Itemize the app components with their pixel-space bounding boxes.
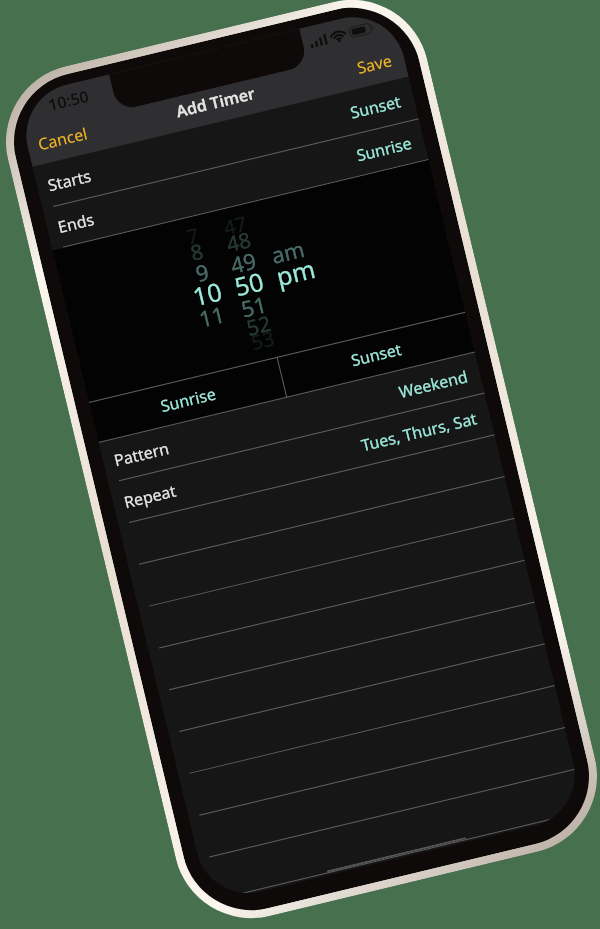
staticText: am — [268, 233, 307, 270]
other: Battery — [348, 21, 376, 39]
staticText: Sunset — [349, 338, 404, 371]
staticText: Ends — [56, 208, 97, 238]
staticText: Save — [355, 49, 394, 79]
button[interactable]: Sunrise — [89, 357, 286, 443]
staticText: 11 — [196, 298, 228, 333]
staticText: Add Timer — [174, 82, 258, 122]
button[interactable]: Repeat — [108, 393, 495, 526]
staticText: 7 — [184, 221, 202, 250]
staticText: Sunrise — [158, 383, 218, 417]
staticText: Sunset — [348, 90, 404, 124]
other: Wi-Fi — [329, 28, 347, 43]
staticText: Weekend — [397, 365, 470, 403]
staticText: Tues, Thurs, Sat — [359, 407, 480, 456]
button[interactable]: Sunset — [277, 312, 475, 398]
button[interactable]: Cancel — [24, 117, 100, 161]
staticText: Cancel — [36, 122, 90, 155]
button[interactable]: Save — [344, 43, 407, 84]
staticText: 49 — [227, 244, 260, 280]
staticText: Repeat — [122, 479, 178, 513]
staticText: 50 — [231, 263, 267, 303]
staticText: 51 — [238, 288, 270, 323]
staticText: 47 — [221, 210, 249, 241]
other: Cellular signal — [309, 34, 328, 48]
staticText: 10 — [189, 273, 225, 313]
staticText: 9 — [192, 256, 212, 288]
button[interactable]: Ends — [43, 119, 429, 250]
staticText: pm — [273, 251, 319, 293]
staticText: 10:50 — [46, 85, 92, 116]
staticText: 8 — [188, 236, 207, 268]
staticText: Sunrise — [354, 132, 414, 166]
button[interactable]: Starts — [32, 76, 419, 209]
staticText: 48 — [224, 225, 255, 259]
staticText: Pattern — [112, 437, 171, 471]
staticText: 52 — [244, 309, 275, 343]
staticText: Starts — [46, 165, 93, 196]
button[interactable]: Pattern — [99, 353, 485, 484]
staticText: 53 — [248, 324, 277, 356]
